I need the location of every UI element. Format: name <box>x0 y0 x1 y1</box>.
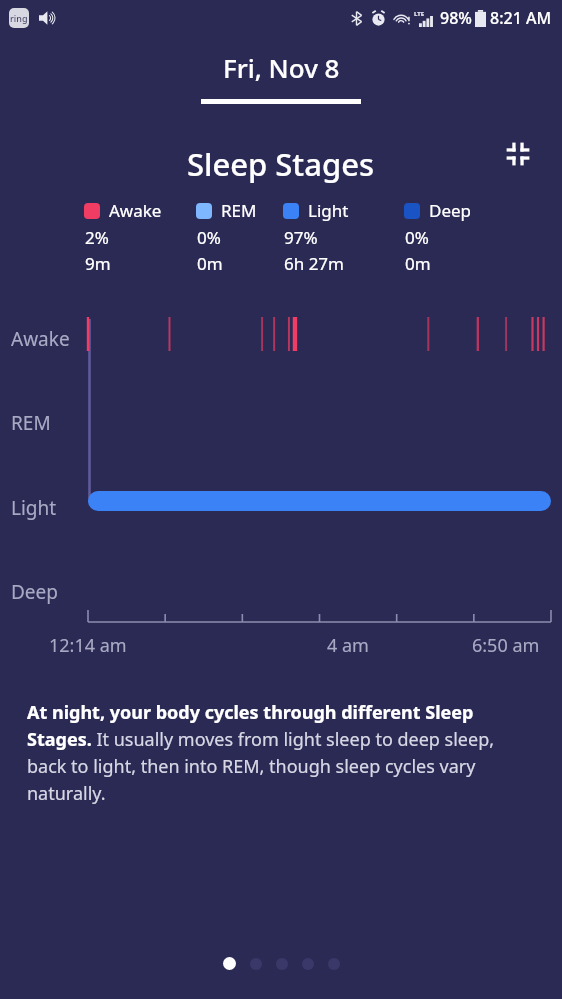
button[interactable]: Page 3 <box>276 958 288 970</box>
button[interactable]: Page 2 <box>250 958 262 970</box>
staticText: 8:21 AM <box>490 7 552 29</box>
staticText: Light <box>11 495 57 521</box>
staticText: Awake <box>11 326 70 352</box>
staticText: Deep <box>429 199 472 222</box>
staticText: Deep <box>11 579 58 605</box>
staticText: 12:14 am <box>49 633 127 658</box>
staticText: 0% <box>197 226 221 249</box>
staticText: 0% <box>405 226 429 249</box>
button[interactable]: Page 1 <box>223 957 236 970</box>
staticText: LTE <box>414 10 425 18</box>
button[interactable]: Sleep stages chart <box>0 300 562 660</box>
staticText: 6:50 am <box>472 633 540 658</box>
staticText: At night, your body cycles through diffe… <box>27 700 532 805</box>
staticText: ring <box>10 12 28 24</box>
staticText: Awake <box>109 199 162 222</box>
button[interactable]: REM <box>196 199 283 275</box>
staticText: 97% <box>284 226 318 249</box>
staticText: 9m <box>85 252 111 275</box>
button[interactable]: Page 5 <box>328 958 340 970</box>
staticText: Fri, Nov 8 <box>223 50 340 85</box>
button[interactable]: Collapse <box>492 128 544 180</box>
button[interactable]: Page 4 <box>302 958 314 970</box>
staticText: 4 am <box>327 633 369 658</box>
staticText: 2% <box>85 226 109 249</box>
staticText: 0m <box>405 252 431 275</box>
staticText: Sleep Stages <box>187 143 375 185</box>
button[interactable]: Deep <box>404 199 504 275</box>
button[interactable]: Light <box>283 199 404 275</box>
staticText: 6h 27m <box>284 252 344 275</box>
staticText: REM <box>221 199 257 222</box>
button[interactable]: Fri, Nov 8 <box>209 48 354 87</box>
staticText: 98% <box>440 7 472 29</box>
staticText: 0m <box>197 252 223 275</box>
staticText: REM <box>11 410 51 436</box>
staticText: Light <box>308 199 349 222</box>
button[interactable]: Awake <box>84 199 196 275</box>
